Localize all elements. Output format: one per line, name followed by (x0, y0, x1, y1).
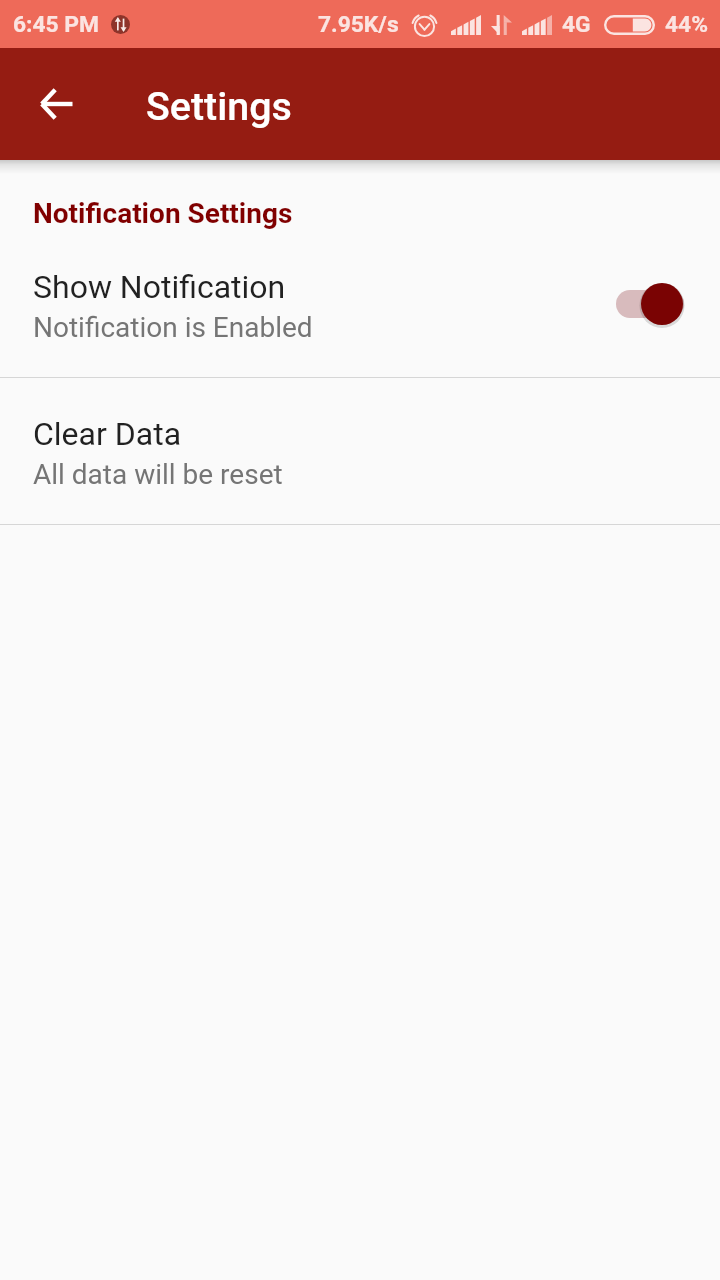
staticText: 4G (562, 11, 591, 38)
staticText: 44% (665, 11, 708, 38)
button[interactable]: Clear Data (0, 378, 720, 524)
staticText: Show Notification (33, 268, 286, 306)
staticText: Clear Data (33, 415, 182, 453)
staticText: Notification is Enabled (33, 311, 313, 344)
staticText: Notification Settings (33, 197, 293, 230)
staticText: 7.95K/s (318, 11, 399, 38)
staticText: All data will be reset (33, 458, 283, 491)
staticText: Settings (146, 83, 292, 129)
staticText: 6:45 PM (13, 11, 100, 38)
button[interactable]: Show Notification (0, 231, 720, 377)
button[interactable]: Back (12, 60, 100, 148)
button[interactable]: Show Notification toggle, on (602, 256, 698, 352)
